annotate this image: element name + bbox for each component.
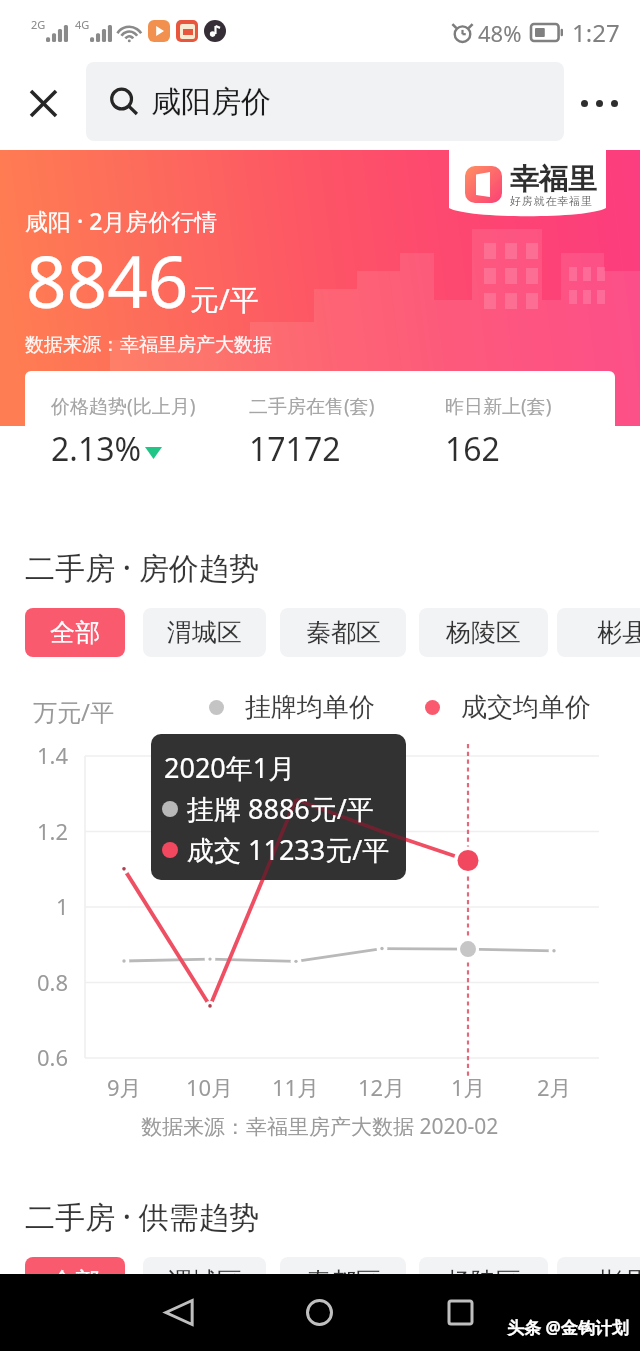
staticText: 幸福里 <box>510 161 597 198</box>
staticText: 9月 <box>107 1072 142 1102</box>
button[interactable]: Recent apps <box>430 1274 490 1351</box>
button[interactable]: Home <box>289 1274 349 1351</box>
staticText: 17172 <box>249 427 341 471</box>
staticText: 万元/平 <box>33 695 114 728</box>
button[interactable]: 杨陵区 <box>419 608 548 657</box>
staticText: 好房就在幸福里 <box>510 194 593 208</box>
staticText: 1.4 <box>37 740 69 770</box>
staticText: 4G <box>75 17 90 32</box>
staticText: 二手房 · 供需趋势 <box>25 1196 259 1237</box>
staticText: 彬县 <box>597 1266 640 1297</box>
staticText: 8846 <box>26 232 189 329</box>
button[interactable]: 彬县 <box>557 1257 640 1306</box>
staticText: 10月 <box>186 1072 234 1102</box>
staticText: 咸阳房价 <box>151 83 271 121</box>
button[interactable]: 渭城区 <box>143 608 266 657</box>
staticText: 渭城区 <box>167 1266 242 1297</box>
staticText: 彬县 <box>597 617 640 648</box>
staticText: 成交均单价 <box>461 691 591 724</box>
button[interactable]: 杨陵区 <box>419 1257 548 1306</box>
staticText: 二手房在售(套) <box>249 393 375 419</box>
staticText: 挂牌均单价 <box>245 691 375 724</box>
staticText: 2.13% <box>51 427 142 471</box>
button[interactable]: 咸阳房价 <box>86 62 564 141</box>
staticText: 元/平 <box>190 279 259 319</box>
button[interactable]: 全部 <box>25 1257 125 1306</box>
button[interactable]: More options <box>563 70 629 136</box>
staticText: 二手房 · 房价趋势 <box>25 547 259 588</box>
staticText: 162 <box>445 427 500 471</box>
staticText: 杨陵区 <box>446 617 521 648</box>
staticText: 秦都区 <box>306 617 381 648</box>
staticText: 数据来源：幸福里房产大数据 <box>25 333 272 357</box>
button[interactable]: 全部 <box>25 608 125 657</box>
staticText: 1月 <box>451 1072 486 1102</box>
staticText: 12月 <box>358 1072 406 1102</box>
staticText: 2月 <box>537 1072 572 1102</box>
button[interactable]: 秦都区 <box>280 608 406 657</box>
staticText: 0.6 <box>37 1042 69 1072</box>
button[interactable]: Back <box>149 1274 209 1351</box>
staticText: 秦都区 <box>306 1266 381 1297</box>
staticText: 1.2 <box>37 816 69 846</box>
button[interactable]: Close <box>10 70 76 136</box>
staticText: 价格趋势(比上月) <box>51 393 196 419</box>
staticText: 渭城区 <box>167 617 242 648</box>
button[interactable]: 秦都区 <box>280 1257 406 1306</box>
staticText: 全部 <box>50 617 100 648</box>
staticText: 48% <box>478 18 522 48</box>
button[interactable]: 昨日新上(套) <box>445 371 615 487</box>
staticText: 2G <box>31 17 46 32</box>
staticText: 杨陵区 <box>446 1266 521 1297</box>
staticText: 挂牌 8886元/平 <box>187 790 374 827</box>
staticText: 成交 11233元/平 <box>187 831 390 868</box>
staticText: 咸阳 · 2月房价行情 <box>25 205 218 236</box>
staticText: 昨日新上(套) <box>445 393 552 419</box>
button[interactable]: 渭城区 <box>143 1257 266 1306</box>
staticText: 数据来源：幸福里房产大数据 2020-02 <box>141 1112 499 1141</box>
staticText: 1 <box>56 891 69 921</box>
button[interactable]: 彬县 <box>557 608 640 657</box>
button[interactable]: 2020年1月 <box>151 734 406 880</box>
staticText: 11月 <box>272 1072 320 1102</box>
staticText: 全部 <box>50 1266 100 1297</box>
staticText: 头条 @金钩计划 <box>507 1316 629 1339</box>
staticText: 2020年1月 <box>164 749 296 786</box>
button[interactable]: 二手房在售(套) <box>249 371 439 487</box>
staticText: 1:27 <box>572 16 620 49</box>
staticText: 0.8 <box>37 967 69 997</box>
button[interactable]: 价格趋势(比上月) <box>51 371 241 487</box>
